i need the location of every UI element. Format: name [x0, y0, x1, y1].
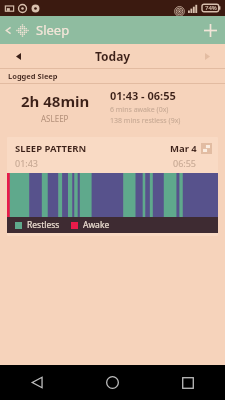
staticText: Restless: [27, 219, 60, 231]
staticText: Mar 4: [170, 142, 197, 155]
button[interactable]: Recent apps: [150, 365, 225, 400]
staticText: 01:43: [15, 157, 39, 169]
button[interactable]: 2h 48min: [0, 84, 225, 130]
staticText: 6 mins awake (0x): [110, 105, 169, 115]
staticText: Logged Sleep: [8, 71, 58, 81]
button[interactable]: Add sleep log: [195, 16, 225, 44]
button[interactable]: Home: [75, 365, 150, 400]
staticText: 2h 48min: [21, 91, 90, 111]
staticText: 06:55: [173, 157, 197, 169]
staticText: Sleep: [36, 21, 70, 39]
staticText: 138 mins restless (9x): [110, 116, 181, 126]
staticText: Today: [95, 48, 131, 64]
staticText: SLEEP PATTERN: [15, 142, 87, 155]
button[interactable]: Previous day: [0, 44, 36, 68]
staticText: ASLEEP: [41, 113, 69, 124]
button[interactable]: Sleep: [0, 16, 78, 44]
staticText: Awake: [83, 219, 110, 231]
staticText: 01:43 - 06:55: [110, 88, 176, 103]
button[interactable]: SLEEP PATTERN: [7, 137, 218, 236]
staticText: 74%: [205, 4, 217, 12]
button[interactable]: Back: [0, 365, 75, 400]
button[interactable]: Expand chart: [201, 143, 212, 154]
button[interactable]: Next day: [189, 44, 225, 68]
